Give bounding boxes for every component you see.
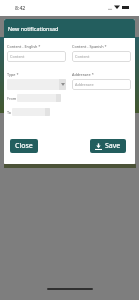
staticText: Content - English * bbox=[7, 44, 41, 49]
button[interactable]: Addressee bbox=[72, 79, 131, 90]
staticText: Addressee bbox=[75, 82, 94, 87]
button[interactable]: Pick date bbox=[12, 108, 50, 116]
button[interactable]: Pick date bbox=[17, 94, 61, 102]
button[interactable]: Content bbox=[72, 51, 131, 62]
staticText: Type * bbox=[7, 72, 19, 77]
staticText: New notificationsad bbox=[8, 25, 59, 32]
button[interactable]: Content bbox=[7, 51, 66, 62]
staticText: Content bbox=[10, 54, 25, 59]
staticText: Content - Spanish * bbox=[72, 44, 107, 49]
button[interactable]: Close bbox=[10, 139, 38, 153]
staticText: To bbox=[7, 110, 12, 115]
button[interactable]: Save bbox=[90, 139, 126, 153]
button[interactable]: Select type bbox=[7, 79, 66, 90]
staticText: Close bbox=[15, 141, 33, 151]
staticText: Content bbox=[75, 54, 90, 59]
staticText: From bbox=[7, 96, 17, 101]
staticText: Addressee * bbox=[72, 72, 94, 77]
staticText: Save bbox=[105, 141, 121, 151]
staticText: 8:42 bbox=[15, 4, 26, 11]
